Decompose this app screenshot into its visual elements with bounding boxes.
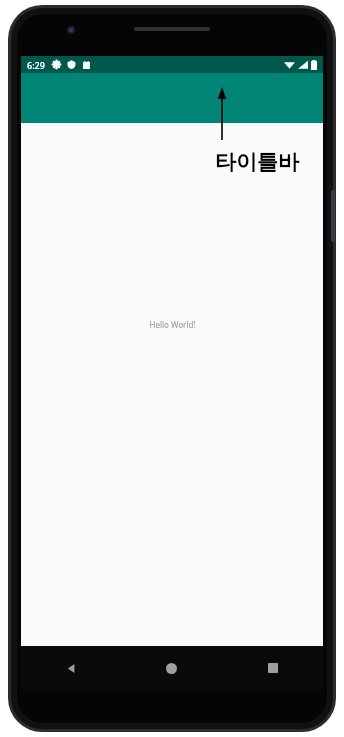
button[interactable] — [21, 73, 323, 123]
button[interactable]: Recents — [222, 646, 323, 690]
staticText: 6:29 — [27, 59, 45, 71]
staticText: Hello World! — [149, 319, 196, 330]
button[interactable]: Back — [21, 646, 121, 690]
button[interactable]: Home — [121, 646, 222, 690]
staticText: 타이틀바 — [215, 149, 299, 175]
